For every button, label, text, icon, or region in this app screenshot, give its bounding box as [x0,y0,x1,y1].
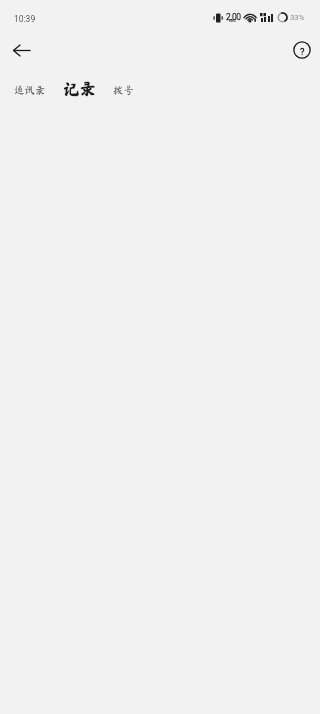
staticText: 通讯录 [14,85,46,95]
button[interactable]: Help [286,34,318,66]
staticText: KB/S [229,18,236,22]
button[interactable]: 拨号 [107,79,140,101]
button[interactable]: 记录 [57,74,102,102]
staticText: 10:39 [14,14,36,24]
button[interactable]: 通讯录 [8,79,52,101]
staticText: ? [300,46,305,57]
staticText: 33% [290,13,304,22]
staticText: 拨号 [113,85,134,95]
staticText: 2.00 [226,12,241,22]
staticText: 记录 [63,80,96,96]
button[interactable]: Back [5,34,39,68]
